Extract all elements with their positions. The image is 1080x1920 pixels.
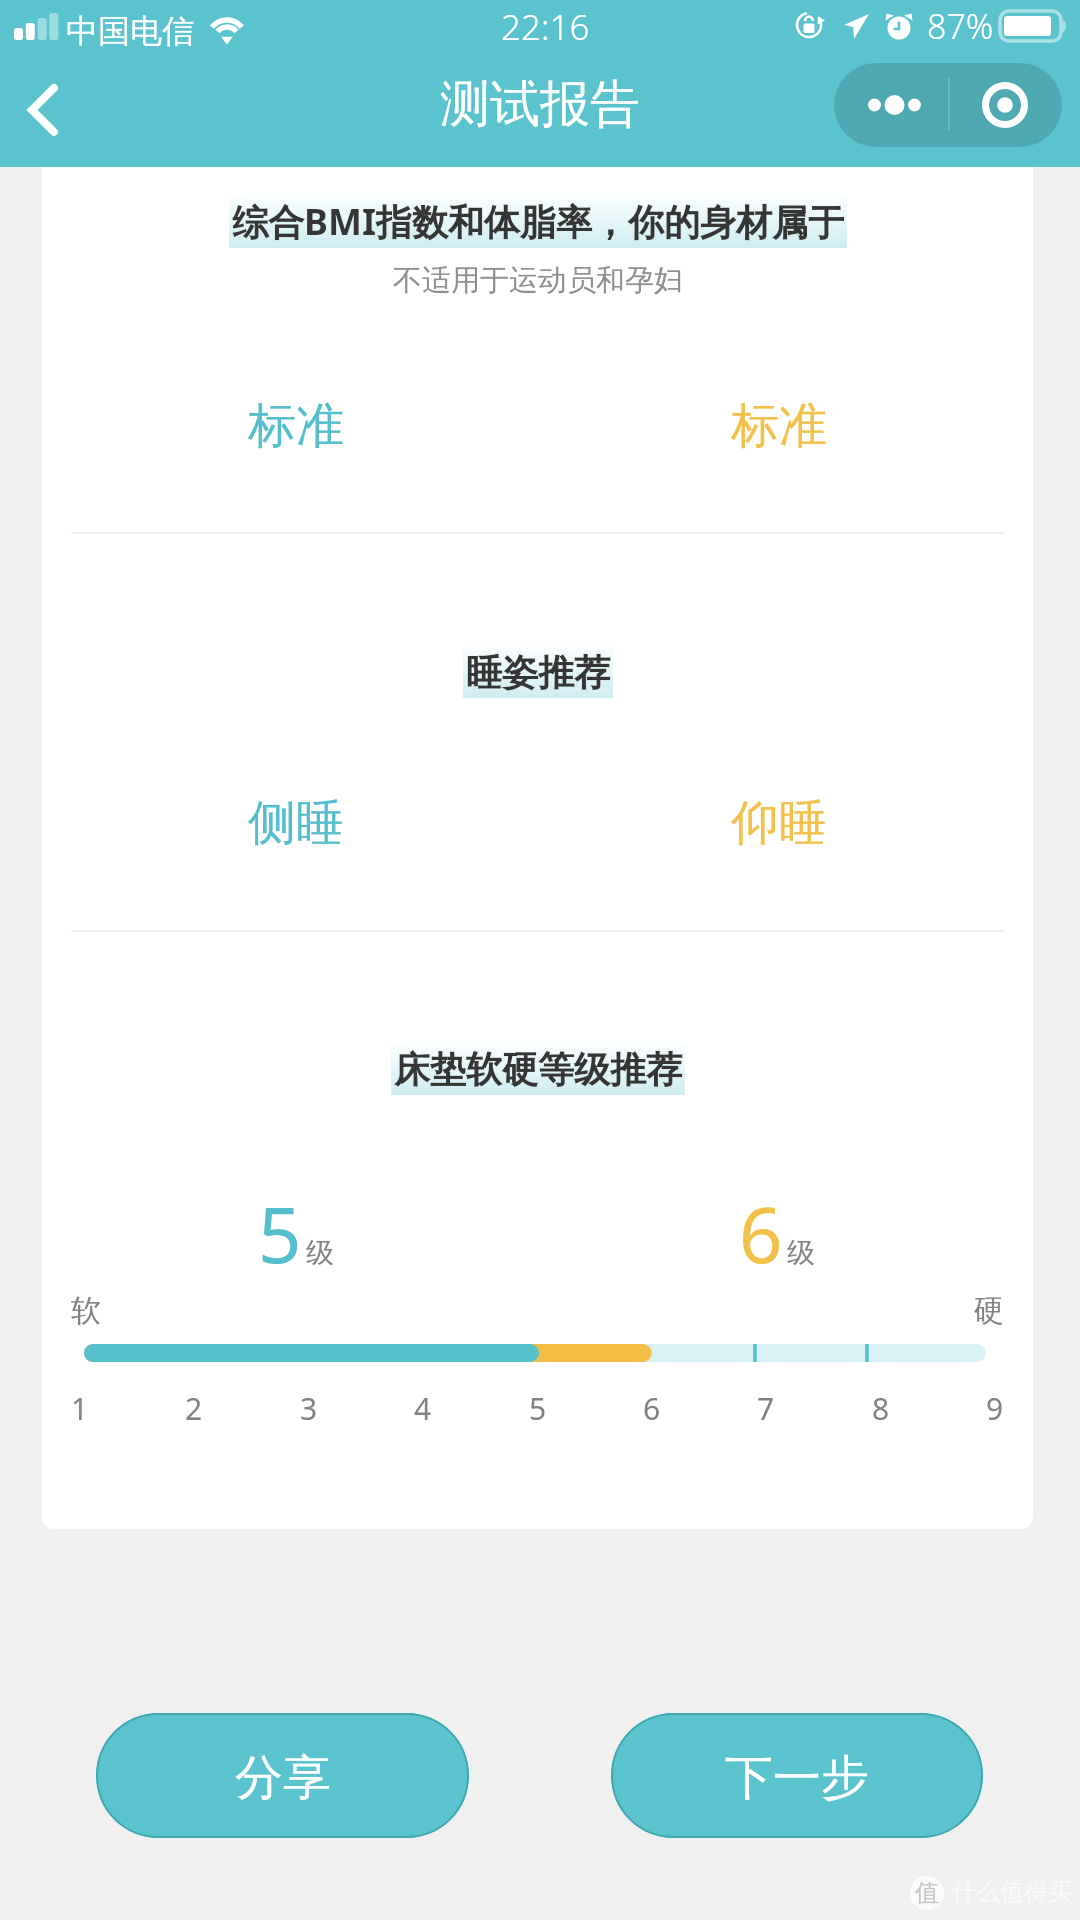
- staticText: 9: [986, 1388, 1004, 1429]
- staticText: 4: [414, 1388, 432, 1429]
- staticText: 分享: [235, 1748, 331, 1808]
- staticText: 不适用于运动员和孕妇: [393, 262, 683, 299]
- staticText: 中国电信: [66, 11, 194, 51]
- button[interactable]: 关闭小程序: [948, 63, 1062, 147]
- staticText: 测试报告: [440, 73, 640, 136]
- button[interactable]: 更多: [834, 63, 948, 147]
- staticText: 什么值得买: [952, 1877, 1072, 1907]
- staticText: 下一步: [725, 1748, 869, 1808]
- staticText: 睡姿推荐: [466, 650, 610, 695]
- button[interactable]: 返回: [0, 60, 92, 167]
- staticText: 6: [739, 1182, 783, 1286]
- staticText: 5: [529, 1388, 547, 1429]
- staticText: 软: [71, 1292, 101, 1330]
- staticText: 值: [915, 1878, 939, 1908]
- staticText: 仰睡: [731, 793, 827, 853]
- staticText: 1: [71, 1388, 89, 1429]
- staticText: 硬: [974, 1292, 1004, 1330]
- staticText: 6: [643, 1388, 661, 1429]
- staticText: 级: [787, 1235, 815, 1270]
- staticText: 8: [872, 1388, 890, 1429]
- button[interactable]: 下一步: [611, 1713, 983, 1838]
- staticText: 综合BMI指数和体脂率，你的身材属于: [232, 197, 844, 246]
- staticText: 5: [258, 1182, 302, 1286]
- staticText: 7: [757, 1388, 775, 1429]
- staticText: 侧睡: [248, 793, 344, 853]
- staticText: 标准: [731, 396, 827, 456]
- staticText: 87%: [927, 3, 994, 49]
- staticText: 3: [300, 1388, 318, 1429]
- staticText: 标准: [248, 396, 344, 456]
- button[interactable]: 分享: [96, 1713, 469, 1838]
- staticText: 2: [185, 1388, 203, 1429]
- staticText: 22:16: [501, 3, 590, 51]
- staticText: 级: [306, 1235, 334, 1270]
- staticText: 床垫软硬等级推荐: [394, 1047, 682, 1092]
